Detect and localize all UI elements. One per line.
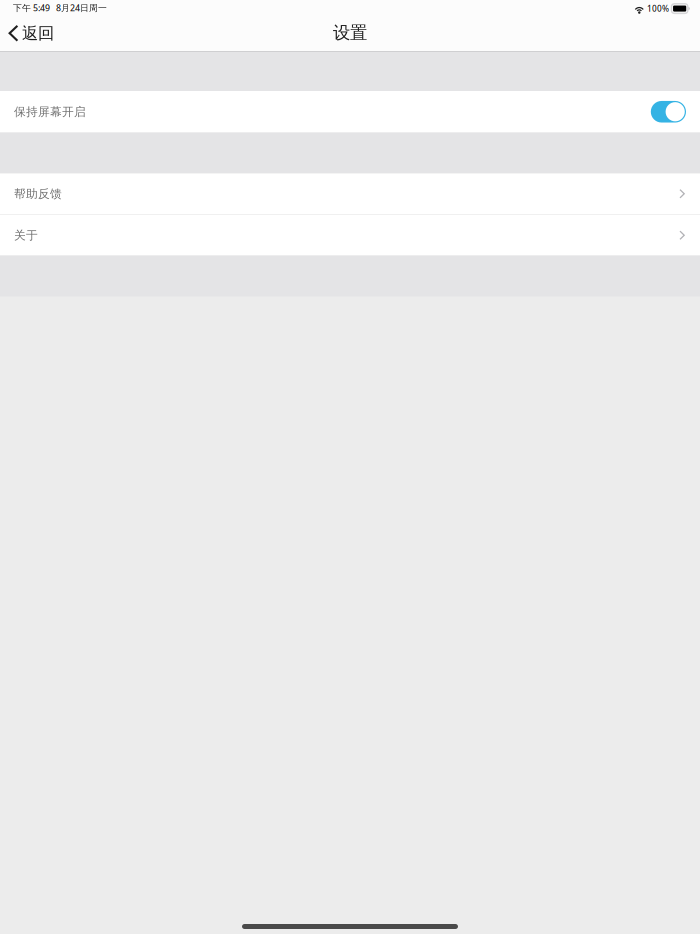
- staticText: 关于: [14, 228, 38, 243]
- staticText: 设置: [333, 22, 367, 44]
- staticText: 下午 5:49 8月24日周一: [13, 2, 107, 14]
- button[interactable]: 关于: [0, 215, 700, 255]
- group: 1: [651, 101, 686, 123]
- button[interactable]: 返回: [0, 17, 60, 51]
- staticText: 返回: [22, 23, 54, 43]
- staticText: 100%: [647, 3, 669, 14]
- button[interactable]: 保持屏幕开启: [0, 91, 700, 132]
- staticText: 帮助反馈: [14, 186, 62, 201]
- button[interactable]: 帮助反馈: [0, 173, 700, 214]
- staticText: 保持屏幕开启: [14, 104, 86, 119]
